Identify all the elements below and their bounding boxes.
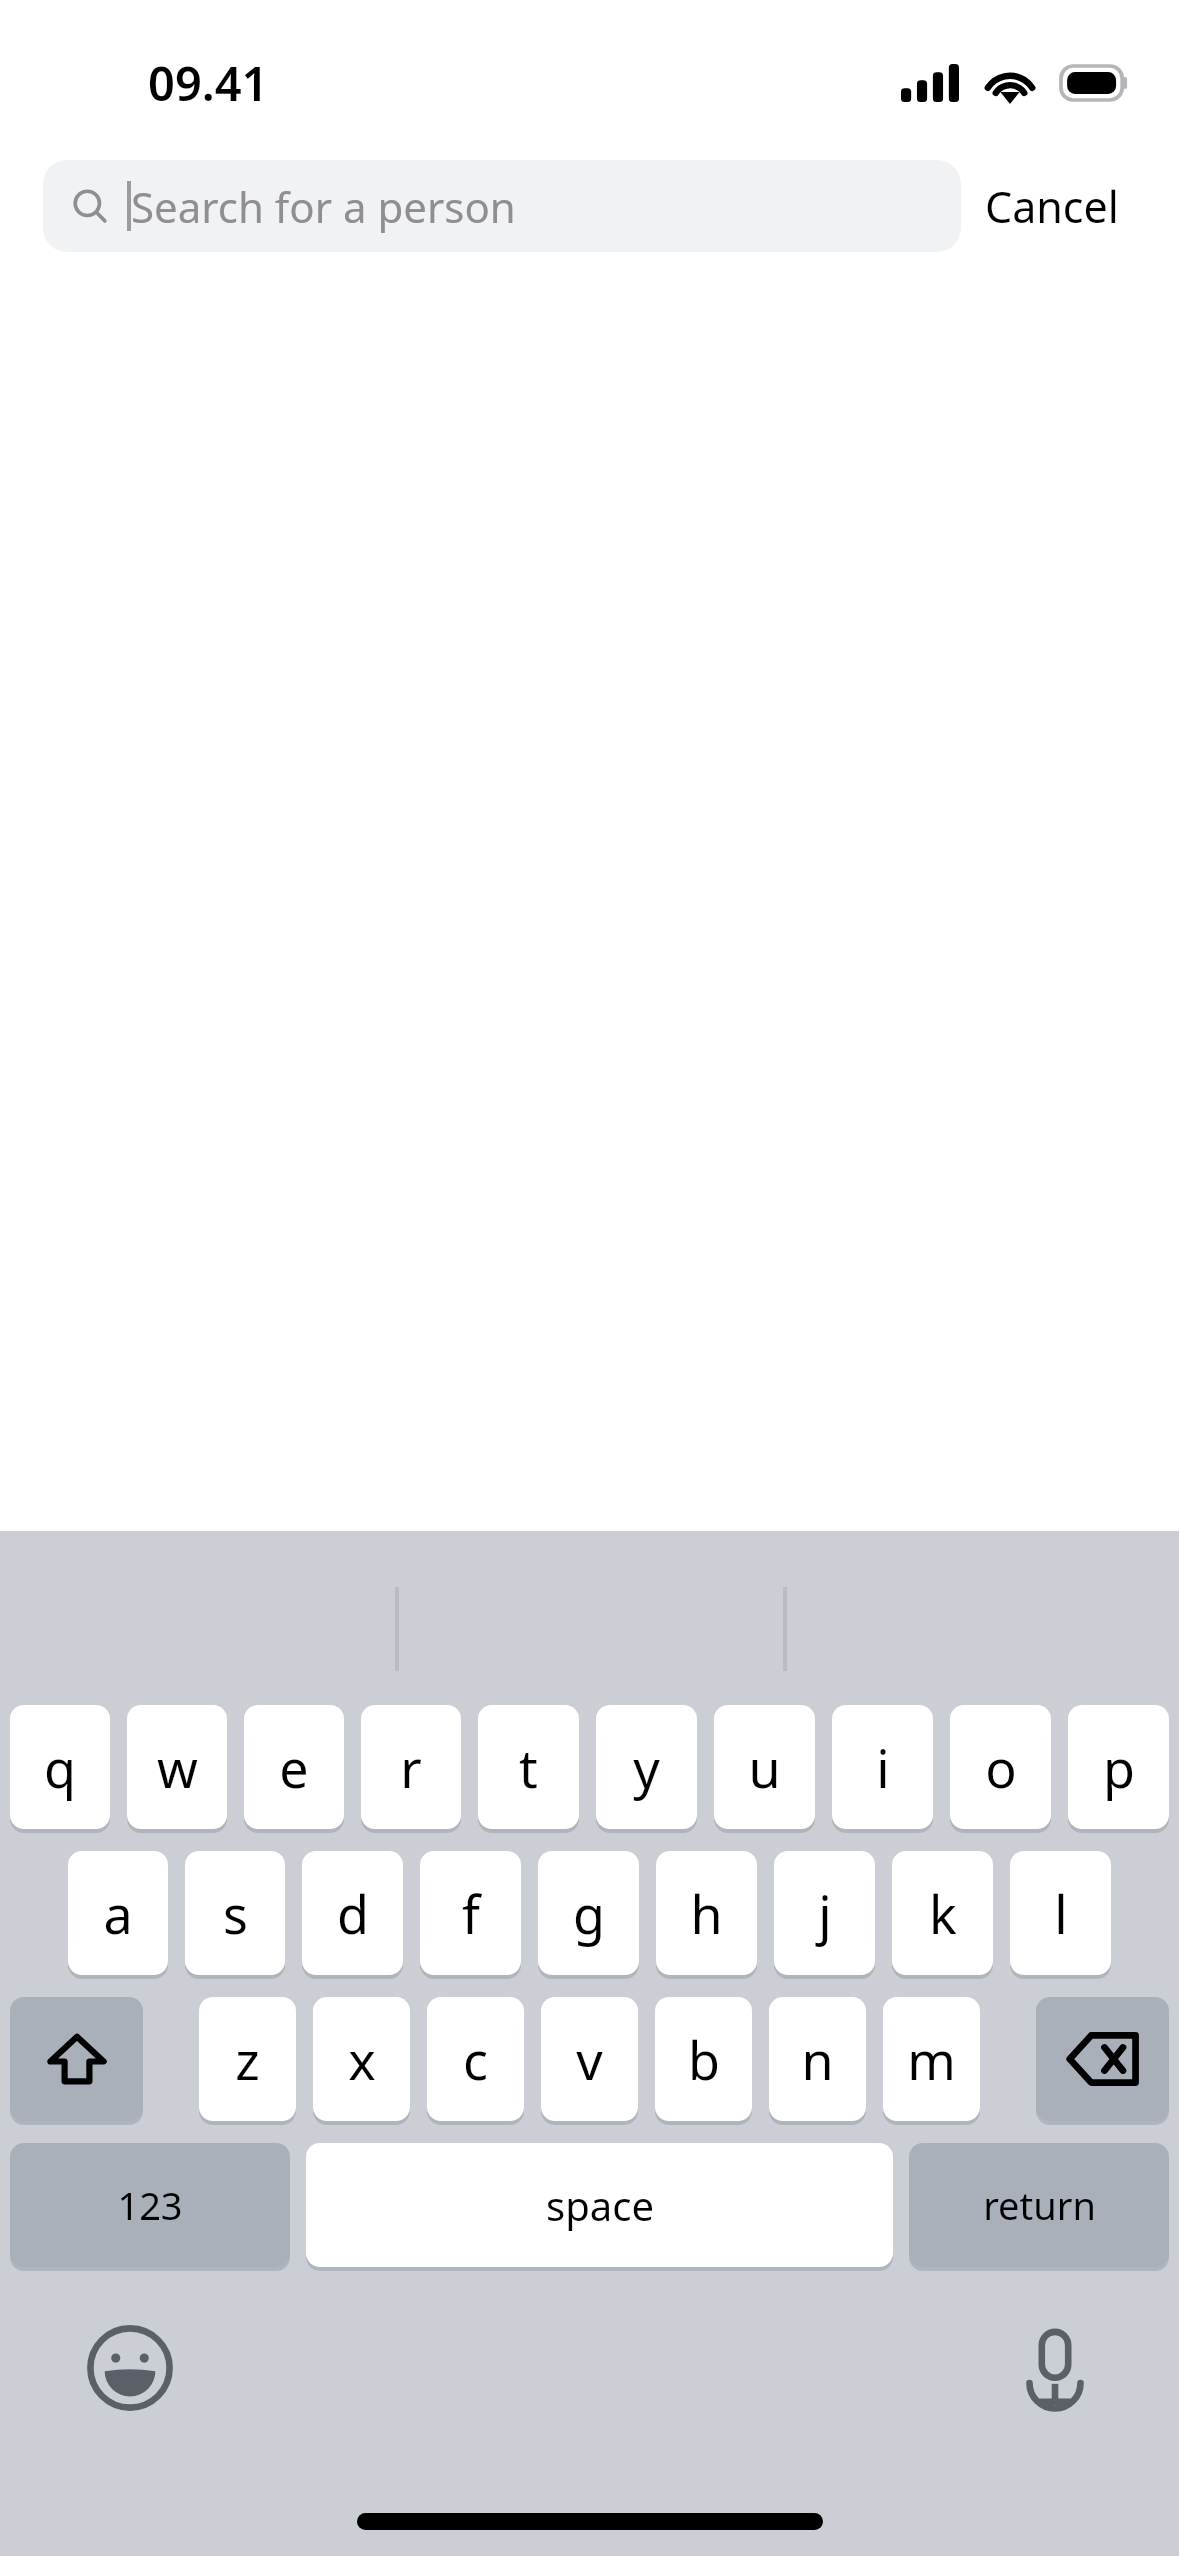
button[interactable] [1036,1997,1169,2121]
button[interactable]: d [302,1851,403,1975]
button[interactable] [10,1997,143,2121]
button[interactable]: s [185,1851,285,1975]
button[interactable]: a [68,1851,168,1975]
staticText: 09.41 [148,51,269,115]
button[interactable]: Cancel [961,165,1143,248]
staticText: o [985,1732,1017,1803]
button[interactable]: e [244,1705,344,1829]
button[interactable]: l [1010,1851,1111,1975]
staticText: c [463,2024,488,2095]
button[interactable]: q [10,1705,110,1829]
staticText: f [462,1878,480,1949]
button[interactable]: y [596,1705,697,1829]
staticText: z [235,2024,260,2095]
staticText: n [801,2024,834,2095]
staticText: Search for a person [131,178,516,235]
staticText: v [576,2024,603,2095]
staticText: j [818,1878,832,1949]
other: Shift [10,1997,143,2121]
staticText: q [44,1732,76,1803]
staticText: y [633,1732,660,1803]
staticText: 123 [117,2179,183,2231]
button[interactable]: v [541,1997,638,2121]
staticText: m [907,2024,956,2095]
staticText: space [546,2178,654,2232]
button[interactable]: j [774,1851,875,1975]
staticText: w [157,1732,198,1803]
button[interactable]: Search for a person [43,160,961,252]
button[interactable]: z [199,1997,296,2121]
button[interactable]: o [950,1705,1051,1829]
staticText: d [337,1878,369,1949]
other: Delete [1036,1997,1169,2121]
staticText: r [400,1732,422,1803]
button[interactable]: c [427,1997,524,2121]
button[interactable]: m [883,1997,980,2121]
staticText: b [688,2024,720,2095]
button[interactable]: b [655,1997,752,2121]
button[interactable]: i [832,1705,933,1829]
button[interactable]: g [538,1851,639,1975]
button[interactable]: space [306,2143,893,2267]
staticText: p [1103,1732,1135,1803]
button[interactable]: h [656,1851,757,1975]
button[interactable]: return [909,2143,1169,2267]
button[interactable]: f [420,1851,521,1975]
staticText: i [876,1732,890,1803]
staticText: l [1054,1878,1068,1949]
staticText: Cancel [985,177,1119,236]
staticText: k [929,1878,957,1949]
button[interactable]: w [127,1705,227,1829]
button[interactable]: k [892,1851,993,1975]
button[interactable]: 123 [10,2143,290,2267]
staticText: a [103,1878,133,1949]
staticText: h [690,1878,723,1949]
staticText: return [983,2179,1096,2231]
button[interactable]: Emoji keyboard [86,2324,174,2412]
button[interactable]: p [1068,1705,1169,1829]
button[interactable]: u [714,1705,815,1829]
staticText: g [573,1878,605,1949]
staticText: x [348,2024,376,2095]
staticText: u [748,1732,781,1803]
button[interactable]: x [313,1997,410,2121]
button[interactable]: n [769,1997,866,2121]
button[interactable]: Dictation [1011,2324,1099,2412]
button[interactable]: r [361,1705,461,1829]
staticText: s [223,1878,248,1949]
staticText: e [279,1732,309,1803]
staticText: t [519,1732,538,1803]
button[interactable]: t [478,1705,579,1829]
